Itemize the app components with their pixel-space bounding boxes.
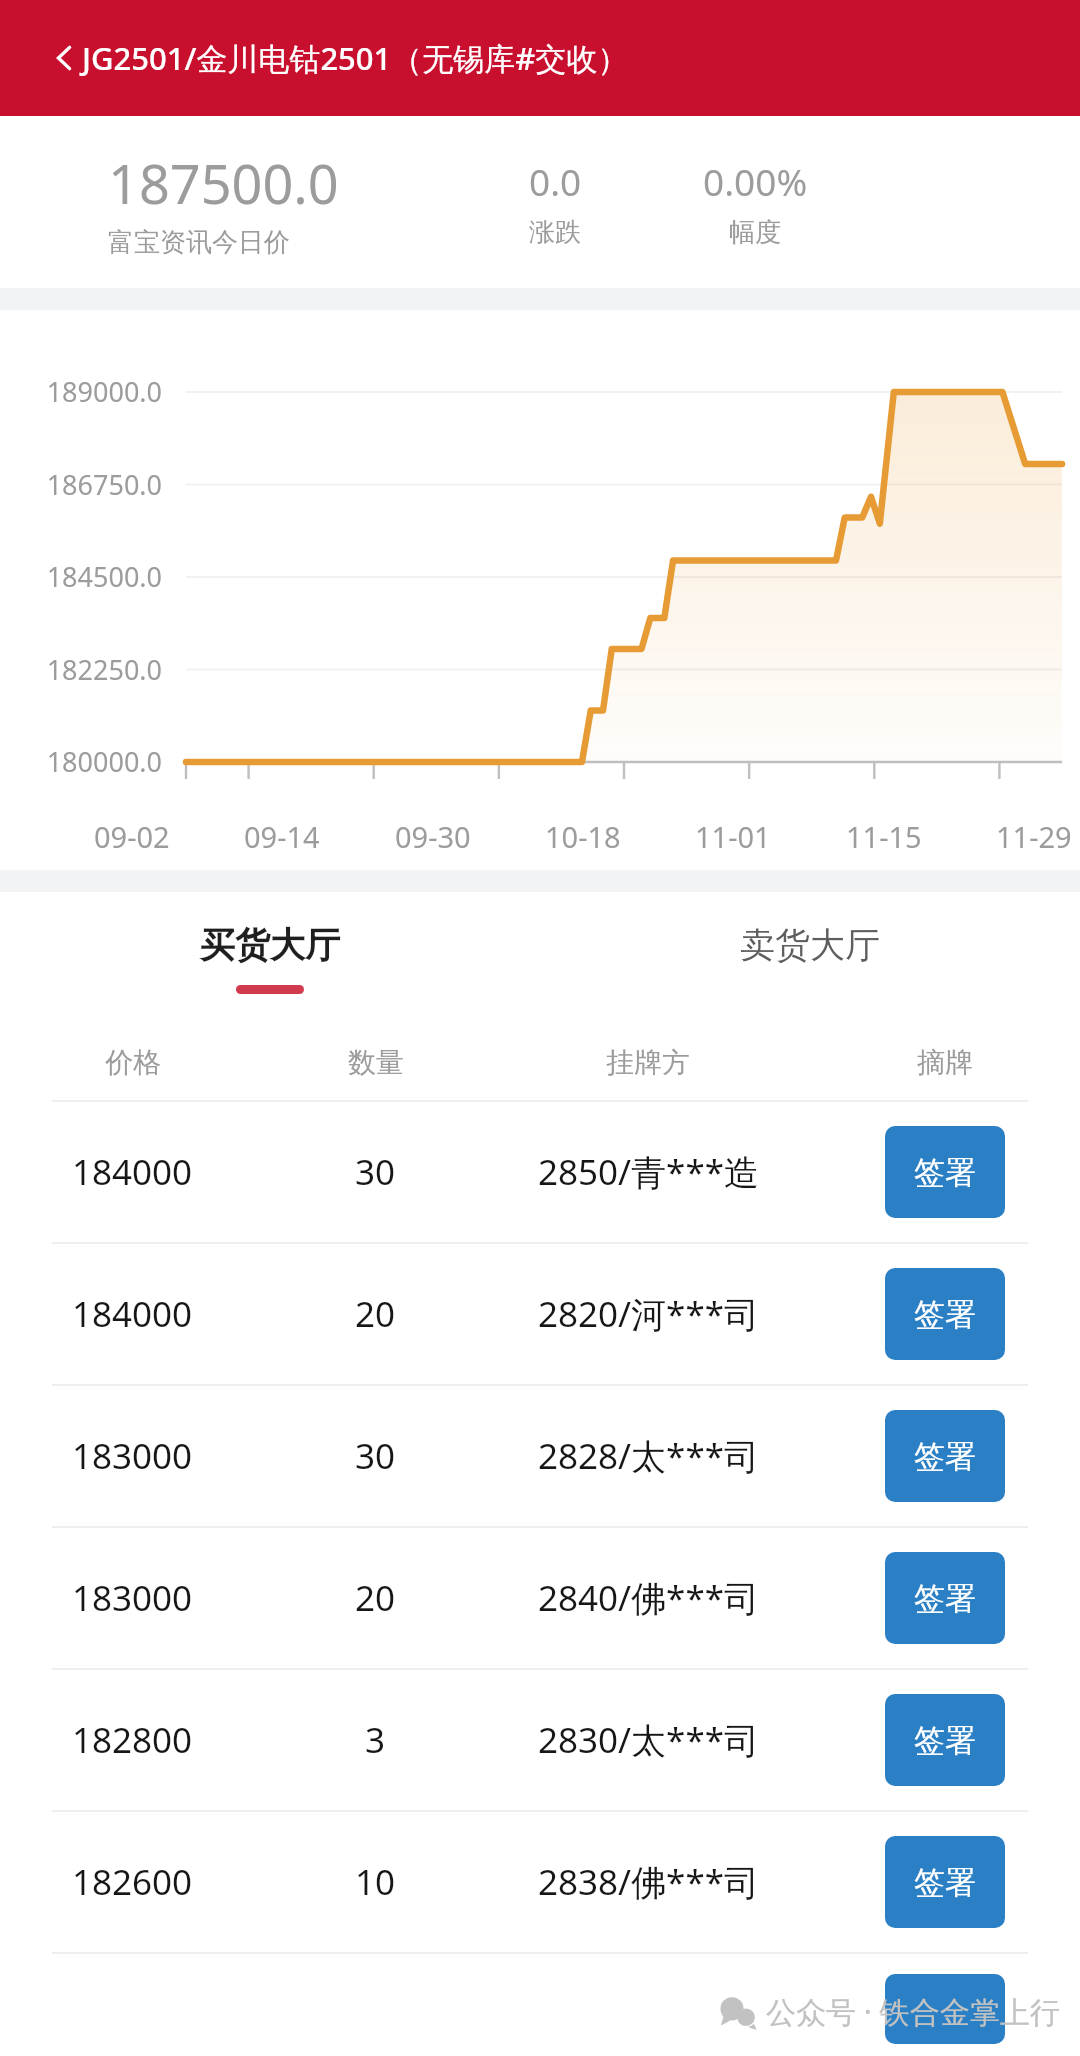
button[interactable]: 买货大厅 <box>0 892 540 1024</box>
button[interactable]: 签署 <box>885 1268 1005 1360</box>
button[interactable] <box>0 1954 1080 2024</box>
staticText: 签署 <box>914 1721 976 1760</box>
staticText: 2850/青***造 <box>538 1148 759 1196</box>
staticText: 10 <box>355 1858 396 1906</box>
button[interactable]: 签署 <box>885 1836 1005 1928</box>
staticText: 幅度 <box>729 216 781 249</box>
staticText: 30 <box>355 1432 396 1480</box>
staticText: 2840/佛***司 <box>538 1574 759 1622</box>
staticText: 2828/太***司 <box>538 1432 759 1480</box>
staticText: 11-15 <box>846 817 922 856</box>
staticText: 公众号 · 铁合金掌上行 <box>766 1991 1060 2032</box>
staticText: 182800 <box>72 1716 193 1764</box>
staticText: 签署 <box>914 1437 976 1476</box>
button[interactable]: 183000 <box>0 1528 1080 1668</box>
button[interactable]: 182600 <box>0 1812 1080 1952</box>
staticText: 10-18 <box>545 817 621 856</box>
staticText: 0.0 <box>529 156 582 206</box>
staticText: 189000.0 <box>0 373 162 410</box>
staticText: 09-14 <box>244 817 320 856</box>
staticText: 182250.0 <box>0 651 162 688</box>
staticText: 187500.0 <box>108 146 339 220</box>
staticText: 签署 <box>914 1153 976 1192</box>
staticText: 2838/佛***司 <box>538 1858 759 1906</box>
staticText: 183000 <box>72 1432 193 1480</box>
staticText: 183000 <box>72 1574 193 1622</box>
staticText: 0.00% <box>703 156 808 206</box>
staticText: 09-02 <box>94 817 170 856</box>
staticText: 180000.0 <box>0 743 162 780</box>
staticText: 184500.0 <box>0 558 162 595</box>
button[interactable]: Back <box>46 40 82 76</box>
button[interactable]: 184000 <box>0 1244 1080 1384</box>
staticText: 价格 <box>105 1045 161 1080</box>
staticText: 数量 <box>348 1045 404 1080</box>
button[interactable]: 签署 <box>885 1126 1005 1218</box>
button[interactable]: 183000 <box>0 1386 1080 1526</box>
staticText: 买货大厅 <box>200 923 340 967</box>
staticText: 签署 <box>914 1863 976 1902</box>
staticText: 摘牌 <box>917 1045 973 1080</box>
button[interactable]: 签署 <box>885 1694 1005 1786</box>
staticText: 涨跌 <box>529 216 581 249</box>
staticText: 卖货大厅 <box>740 923 880 967</box>
staticText: 184000 <box>72 1290 193 1338</box>
staticText: 挂牌方 <box>606 1045 690 1080</box>
staticText: 20 <box>355 1574 396 1622</box>
staticText: 2820/河***司 <box>538 1290 759 1338</box>
button[interactable]: 卖货大厅 <box>540 892 1080 1024</box>
staticText: 11-01 <box>695 817 771 856</box>
button[interactable]: 签署 <box>885 1552 1005 1644</box>
staticText: 富宝资讯今日价 <box>108 226 290 259</box>
staticText: 签署 <box>914 1295 976 1334</box>
button[interactable]: 184000 <box>0 1102 1080 1242</box>
button[interactable]: 182800 <box>0 1670 1080 1810</box>
staticText: 2830/太***司 <box>538 1716 759 1764</box>
staticText: 30 <box>355 1148 396 1196</box>
staticText: 签署 <box>914 1579 976 1618</box>
staticText: 3 <box>365 1716 386 1764</box>
button[interactable]: 签署 <box>885 1410 1005 1502</box>
staticText: 186750.0 <box>0 466 162 503</box>
staticText: 184000 <box>72 1148 193 1196</box>
staticText: JG2501/金川电钴2501（无锡库#交收） <box>82 37 629 79</box>
staticText: 20 <box>355 1290 396 1338</box>
staticText: 182600 <box>72 1858 193 1906</box>
staticText: 09-30 <box>395 817 471 856</box>
staticText: 11-29 <box>996 817 1072 856</box>
